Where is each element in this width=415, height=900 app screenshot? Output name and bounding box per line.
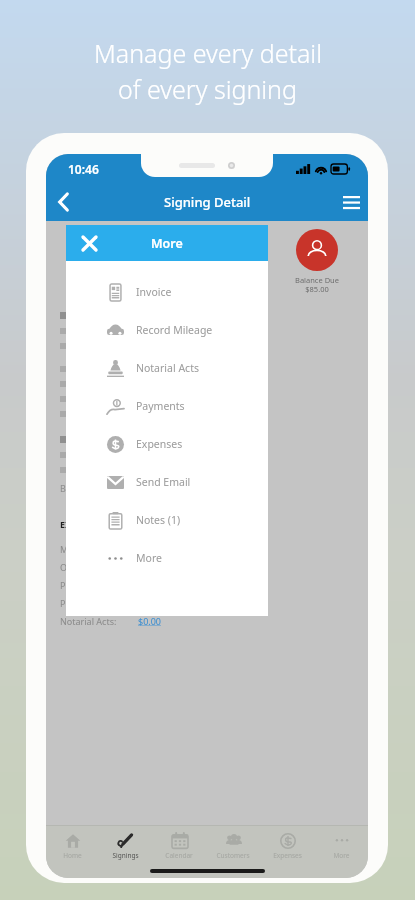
staticText: Payments <box>136 399 185 413</box>
button[interactable]: Record Mileage <box>66 311 268 349</box>
button[interactable]: Customers <box>206 832 260 860</box>
button[interactable]: More <box>314 832 368 860</box>
staticText: Send Email <box>136 475 191 489</box>
staticText: Notes (1) <box>136 513 181 527</box>
button[interactable]: Payments <box>66 387 268 425</box>
staticText: Manage every detail <box>94 36 322 70</box>
staticText: Balance: <box>60 482 96 494</box>
button[interactable]: Never Confirmed <box>60 229 133 294</box>
staticText: Notarial Acts <box>136 361 199 375</box>
staticText: Signing Detail <box>164 193 251 211</box>
button[interactable]: Back <box>46 185 80 219</box>
staticText: Expenses <box>136 437 183 451</box>
staticText: Mileage: <box>60 543 96 555</box>
staticText: Invoice <box>136 285 172 299</box>
staticText: Other Exp: <box>60 561 105 573</box>
button[interactable]: Send Email <box>66 463 268 501</box>
staticText: $85.00 <box>140 482 169 494</box>
button[interactable]: Calendar <box>152 832 206 860</box>
staticText: Balance Due $85.00 <box>295 275 339 294</box>
staticText: More <box>333 851 350 860</box>
staticText: Never Confirmed <box>78 275 116 294</box>
staticText: Expenses <box>273 851 302 860</box>
staticText: Calendar <box>165 851 193 860</box>
button[interactable]: Home <box>46 832 99 860</box>
staticText: More <box>136 551 162 565</box>
staticText: $0.00 <box>138 561 162 573</box>
staticText: More <box>151 235 183 252</box>
button[interactable]: Notarial Acts <box>66 349 268 387</box>
button[interactable]: Notes (1) <box>66 501 268 539</box>
button[interactable]: Invoice <box>66 273 268 311</box>
button[interactable]: Close <box>76 230 102 256</box>
staticText: Home <box>63 851 82 860</box>
button[interactable]: Menu <box>334 185 368 219</box>
staticText: $0.00 <box>138 615 162 627</box>
staticText: Signings <box>112 851 139 860</box>
staticText: of every signing <box>118 72 297 106</box>
button[interactable]: Balance Due $85.00 <box>280 229 354 294</box>
staticText: EXPENSES / PROFIT <box>60 518 145 530</box>
staticText: Customers <box>216 851 250 860</box>
button[interactable]: Expenses <box>260 832 314 860</box>
staticText: Profit w/Miles: <box>60 597 121 609</box>
staticText: $0.00 <box>138 543 162 555</box>
staticText: Record Mileage <box>136 323 213 337</box>
button[interactable]: Expenses <box>66 425 268 463</box>
staticText: 10:46 <box>68 161 99 177</box>
button[interactable]: More <box>66 539 268 577</box>
staticText: Notarial Acts: <box>60 615 117 627</box>
button[interactable]: Signings <box>99 832 152 860</box>
staticText: Profit w/o Miles: <box>60 579 129 591</box>
